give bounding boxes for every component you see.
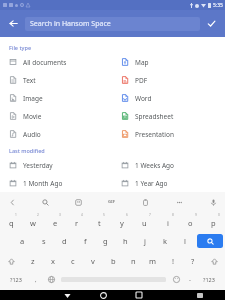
staticText: t [98, 218, 101, 228]
staticText: Yesterday [23, 161, 53, 170]
staticText: l [184, 236, 186, 246]
button[interactable]: s [33, 231, 54, 251]
button[interactable]: Hyphen [184, 271, 196, 288]
button[interactable]: More options [172, 195, 186, 209]
button[interactable]: a [12, 231, 33, 251]
button[interactable]: f [75, 231, 95, 251]
button[interactable]: g [95, 231, 115, 251]
staticText: 5 [103, 213, 105, 217]
button[interactable]: 2 [22, 211, 44, 231]
button[interactable]: Home [85, 290, 121, 300]
staticText: Last modified [9, 147, 45, 154]
button[interactable]: ! [163, 251, 183, 271]
button[interactable]: j [135, 231, 155, 251]
staticText: 6 [126, 213, 128, 217]
button[interactable]: l [175, 231, 195, 251]
button[interactable]: Backspace [203, 251, 225, 271]
button[interactable]: ? [183, 251, 203, 271]
button[interactable]: m [143, 251, 163, 271]
button[interactable]: Voice input [206, 195, 220, 209]
button[interactable]: Stickers [71, 195, 85, 209]
button[interactable]: 5 [88, 211, 110, 231]
button[interactable]: Word [112, 89, 225, 107]
button[interactable]: Confirm [203, 15, 220, 32]
staticText: s [42, 236, 46, 246]
staticText: b [111, 256, 116, 266]
staticText: 1 [15, 213, 17, 217]
button[interactable]: Presentation [112, 125, 225, 143]
button[interactable]: Recents [121, 290, 157, 300]
staticText: All documents [23, 58, 67, 67]
button[interactable]: d [54, 231, 75, 251]
staticText: 4 [81, 213, 83, 217]
staticText: c [71, 256, 75, 266]
staticText: Audio [23, 130, 41, 139]
staticText: 1 Month Ago [23, 179, 63, 188]
button[interactable]: 8 [156, 211, 179, 231]
button[interactable]: Search [197, 234, 223, 248]
button[interactable]: Audio [0, 125, 112, 143]
button[interactable]: Yesterday [0, 156, 112, 174]
button[interactable]: Shift [0, 251, 23, 271]
button[interactable]: All documents [0, 53, 112, 71]
button[interactable]: Text [0, 71, 112, 89]
button[interactable]: PDF [112, 71, 225, 89]
button[interactable]: 1 Month Ago [0, 174, 112, 192]
button[interactable]: Language [43, 271, 59, 288]
staticText: r [75, 218, 79, 228]
button[interactable]: 1 Year Ago [112, 174, 225, 192]
button[interactable]: 3 [44, 211, 66, 231]
staticText: 1 Weeks Ago [135, 161, 175, 170]
staticText: Text [23, 76, 36, 85]
staticText: Word [135, 94, 152, 103]
staticText: f [84, 236, 87, 246]
button[interactable]: Back [5, 195, 19, 209]
button[interactable]: GIF [104, 195, 118, 209]
button[interactable]: k [155, 231, 175, 251]
button[interactable]: Back [49, 290, 85, 300]
button[interactable]: Map [112, 53, 225, 71]
button[interactable]: b [103, 251, 123, 271]
staticText: Map [135, 58, 149, 67]
button[interactable]: x [43, 251, 63, 271]
staticText: 1 Year Ago [135, 179, 168, 188]
staticText: File type [9, 44, 32, 51]
button[interactable]: 4 [66, 211, 88, 231]
button[interactable]: n [123, 251, 143, 271]
staticText: PDF [135, 76, 148, 85]
button[interactable]: h [115, 231, 135, 251]
staticText: ?123 [203, 276, 215, 283]
button[interactable]: Search in Hansom Space [25, 17, 200, 31]
button[interactable]: Search [38, 195, 52, 209]
button[interactable]: 7 [133, 211, 156, 231]
button[interactable]: Switch keyboard [182, 290, 218, 300]
button[interactable]: Image [0, 89, 112, 107]
staticText: w [30, 218, 36, 228]
button[interactable]: c [63, 251, 83, 271]
staticText: 0 [218, 213, 220, 217]
button[interactable]: 6 [110, 211, 133, 231]
staticText: o [188, 218, 193, 228]
button[interactable]: Emoji [168, 271, 184, 288]
button[interactable]: v [83, 251, 103, 271]
button[interactable]: Comma [29, 271, 43, 288]
staticText: ? [191, 256, 195, 266]
button[interactable]: 9 [179, 211, 202, 231]
staticText: 3 [59, 213, 61, 217]
staticText: k [163, 236, 168, 246]
staticText: Image [23, 94, 43, 103]
button[interactable]: ?123 [3, 271, 29, 288]
button[interactable]: Back [5, 15, 22, 32]
button[interactable]: Clipboard [138, 195, 152, 209]
button[interactable]: ?123 [196, 271, 222, 288]
button[interactable]: 1 [0, 211, 22, 231]
button[interactable]: z [23, 251, 43, 271]
button[interactable]: Movie [0, 107, 112, 125]
button[interactable]: 0 [202, 211, 225, 231]
button[interactable]: 1 Weeks Ago [112, 156, 225, 174]
staticText: q [9, 218, 14, 228]
staticText: u [142, 218, 147, 228]
staticText: i [167, 218, 169, 228]
button[interactable]: Spreadsheet [112, 107, 225, 125]
